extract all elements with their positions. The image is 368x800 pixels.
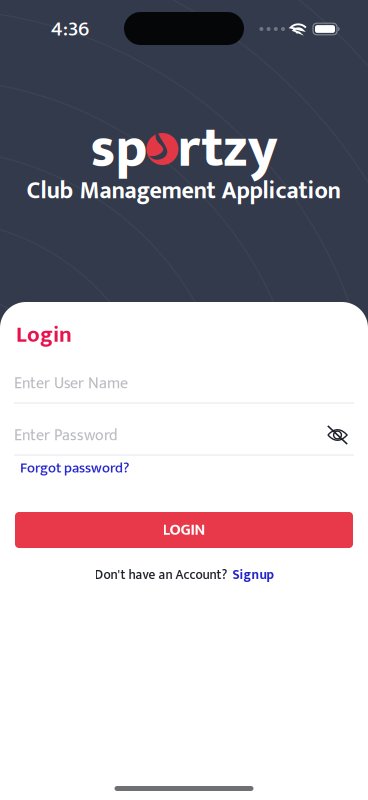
button[interactable]: Signup — [232, 564, 273, 586]
button[interactable]: Forgot password? — [20, 460, 129, 476]
staticText: sp — [90, 102, 147, 196]
staticText: Enter User Name — [14, 370, 128, 397]
button[interactable]: LOGIN — [15, 512, 353, 548]
staticText: Don't have an Account? — [94, 564, 227, 586]
staticText: rtzy — [177, 102, 277, 196]
button[interactable]: Show password — [322, 424, 354, 446]
staticText: Login — [16, 316, 72, 354]
staticText: Forgot password? — [20, 456, 129, 480]
staticText: LOGIN — [162, 517, 205, 543]
staticText: Enter Password — [14, 422, 118, 449]
staticText: Club Management Application — [26, 171, 341, 211]
staticText: 4:36 — [51, 11, 89, 47]
staticText: Signup — [232, 564, 273, 586]
